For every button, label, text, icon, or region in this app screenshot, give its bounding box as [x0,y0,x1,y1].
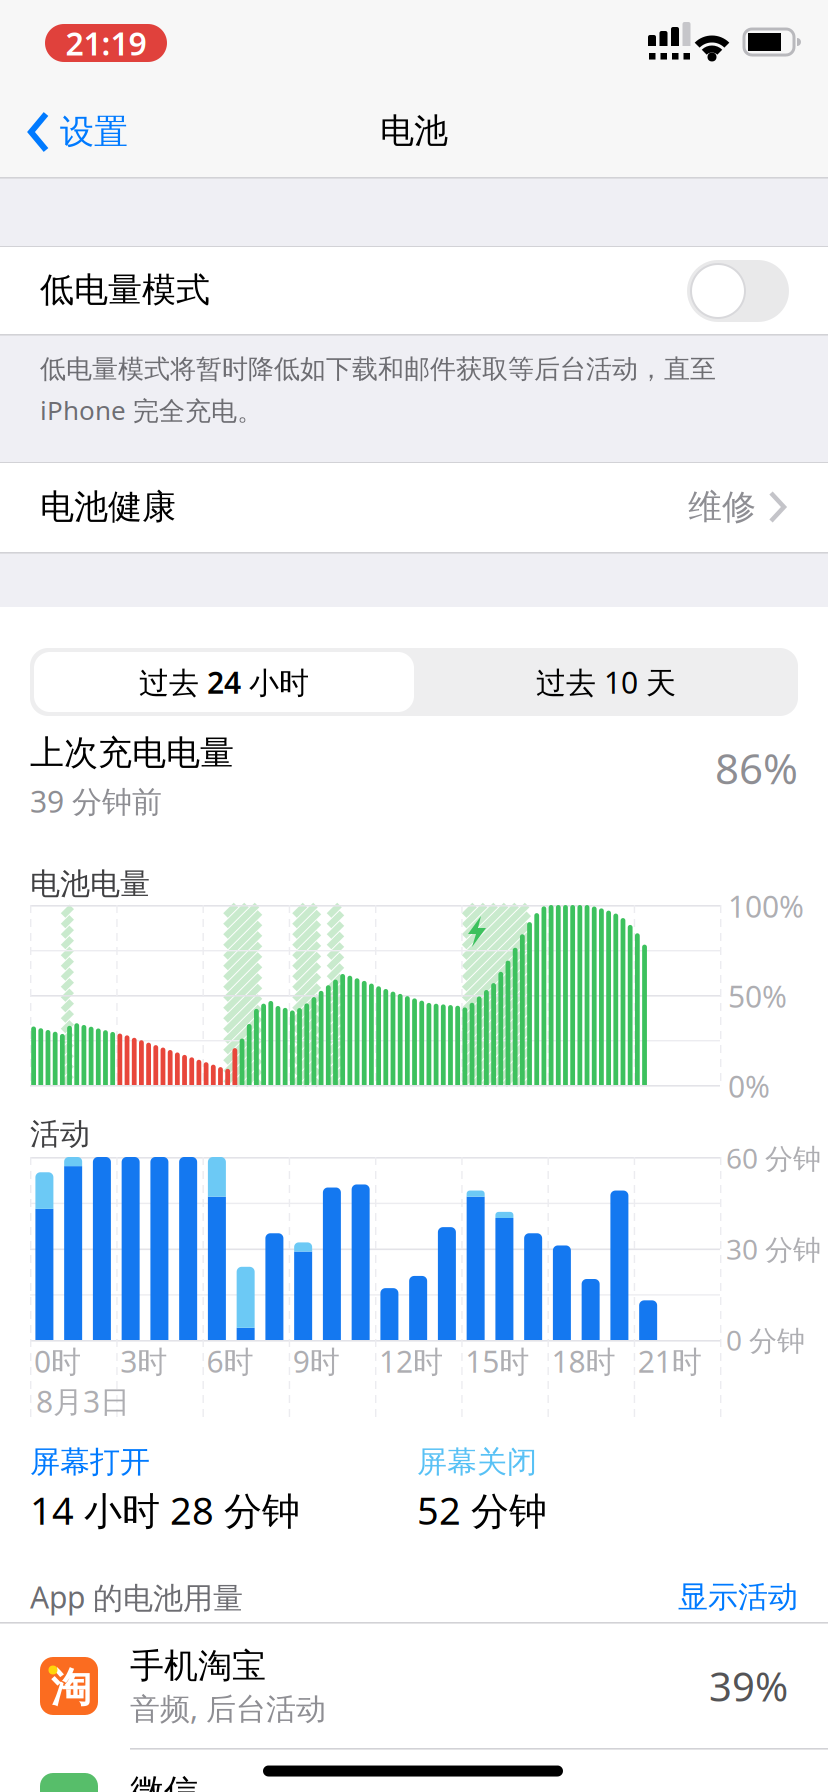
staticText: 活动 [30,1115,90,1153]
staticText: 微信 [130,1771,198,1792]
staticText: 12时 [379,1341,443,1381]
button[interactable]: 返回设置 [28,102,208,162]
staticText: 过去 10 天 [536,662,676,702]
staticText: 低电量模式将暂时降低如下载和邮件获取等后台活动，直至 [40,353,716,385]
staticText: 14 小时 28 分钟 [30,1484,300,1536]
staticText: 音频, 后台活动 [130,1688,326,1728]
staticText: 过去 24 小时 [139,662,309,702]
staticText: 39 分钟前 [30,781,162,821]
button[interactable]: 低电量模式开关 [687,260,789,322]
staticText: 电池电量 [30,865,150,903]
button[interactable]: 淘 [0,1623,828,1749]
button[interactable]: 微信 [0,1748,828,1792]
staticText: 21:19 [65,21,146,65]
staticText: 0时 [34,1341,81,1381]
staticText: 设置 [60,111,128,153]
button[interactable]: 过去 10 天 [416,652,796,712]
staticText: 显示活动 [678,1578,798,1616]
staticText: 100% [728,886,804,926]
staticText: 电池健康 [40,486,176,528]
staticText: 0 分钟 [726,1321,805,1359]
staticText: iPhone 完全充电。 [40,392,263,428]
staticText: 6时 [206,1341,253,1381]
staticText: 18时 [551,1341,615,1381]
staticText: 淘 [51,1663,91,1713]
staticText: 86% [715,739,798,797]
staticText: 8月3日 [36,1381,130,1421]
staticText: App 的电池用量 [30,1576,243,1617]
staticText: 低电量模式 [40,269,210,311]
staticText: 15时 [465,1341,529,1381]
button[interactable]: 显示活动 [598,1577,798,1617]
staticText: 60 分钟 [726,1139,821,1177]
staticText: 电池 [380,110,448,152]
staticText: 39% [709,1659,788,1713]
staticText: 维修 [688,486,756,528]
staticText: 52 分钟 [417,1484,547,1536]
staticText: 50% [728,976,787,1016]
staticText: 手机淘宝 [130,1645,266,1687]
button[interactable]: 过去 24 小时 [34,652,414,712]
staticText: 9时 [293,1341,340,1381]
staticText: 3时 [120,1341,167,1381]
staticText: 上次充电电量 [30,732,234,774]
button[interactable]: 电池健康 [0,463,828,551]
staticText: 0% [728,1066,770,1106]
staticText: 屏幕关闭 [417,1443,537,1481]
staticText: 屏幕打开 [30,1443,150,1481]
staticText: 30 分钟 [726,1230,821,1268]
staticText: 21时 [638,1341,702,1381]
button[interactable]: 正在共享热点，返回 [45,24,167,62]
